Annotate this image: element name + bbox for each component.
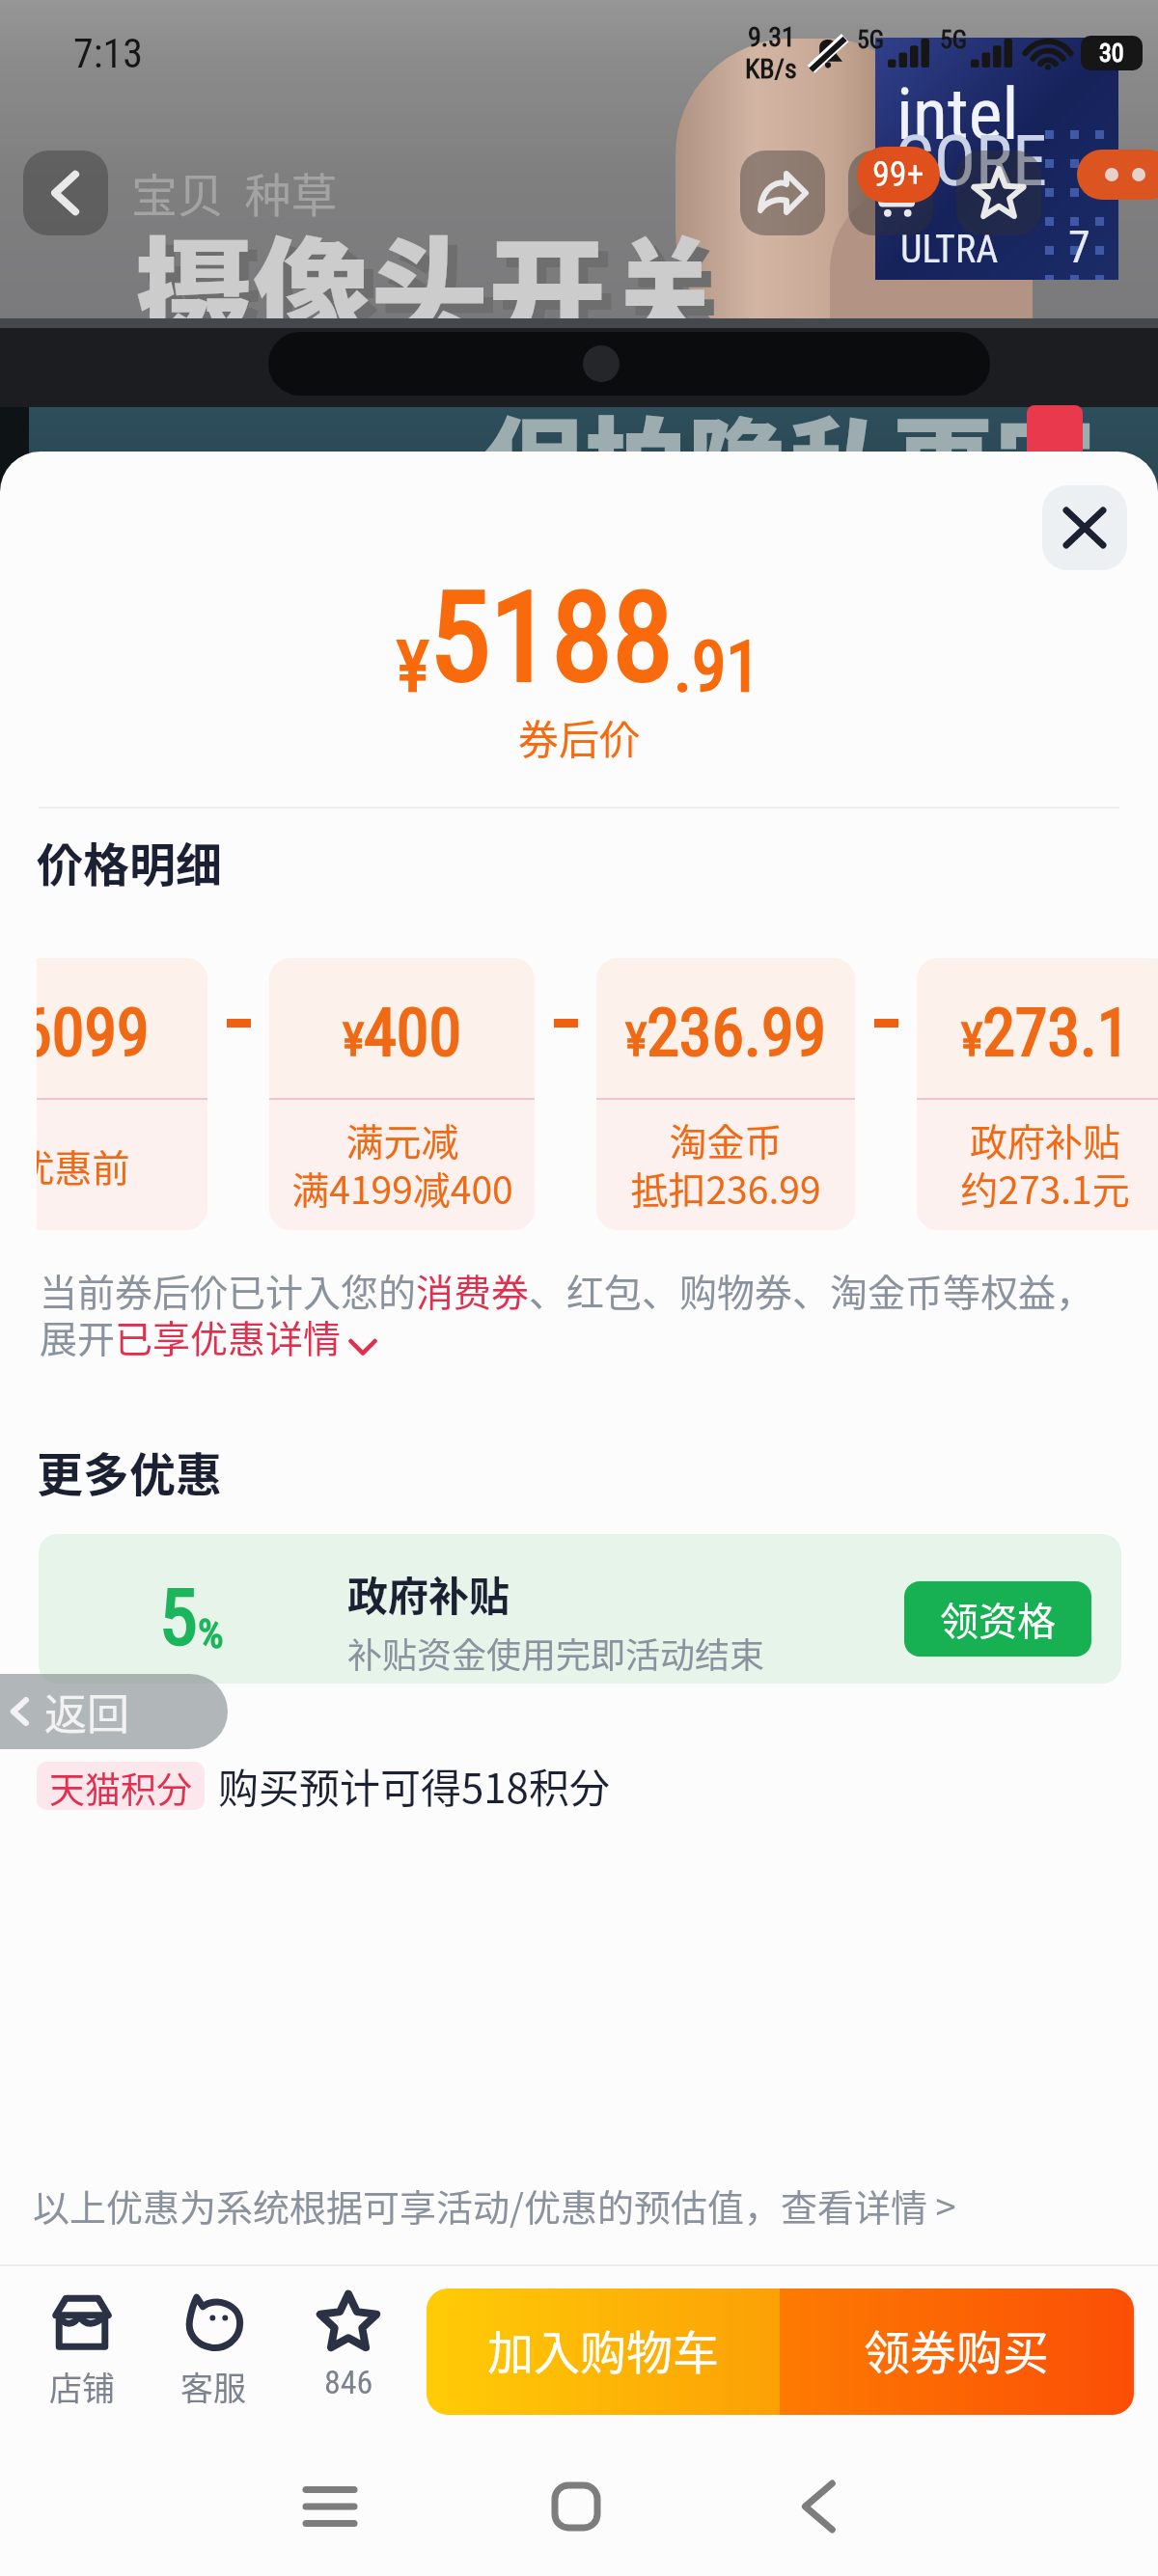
staticText: 5G (940, 25, 968, 54)
staticText: KB/s (745, 53, 797, 85)
button[interactable]: ¥400 (269, 958, 535, 1230)
staticText: 领资格 (940, 1591, 1056, 1647)
button[interactable]: Favorite (956, 151, 1041, 235)
staticText: 淘金币 抵扣236.99 (630, 1112, 821, 1215)
staticText: .91 (674, 626, 761, 707)
button[interactable]: 店铺 (21, 2291, 143, 2410)
staticText: 99+ (872, 154, 924, 195)
button[interactable]: Back (23, 151, 108, 235)
staticText: 7 (1068, 221, 1090, 273)
staticText: 9.31 (748, 21, 795, 53)
staticText: 5188 (429, 565, 674, 710)
staticText: 加入购物车 (487, 2316, 720, 2383)
staticText: ULTRA (900, 227, 999, 272)
staticText: CORE (895, 121, 1048, 202)
staticText: 更多优惠 (37, 1438, 223, 1505)
staticText: 以上优惠为系统根据可享活动/优惠的预估值，查看详情 > (33, 2179, 956, 2232)
staticText: ¥6099 (37, 995, 150, 1072)
staticText: ¥ (397, 626, 429, 707)
staticText: 摄像头开关 (135, 199, 724, 370)
button[interactable]: 领券购买 (780, 2288, 1134, 2415)
button[interactable]: Recents (284, 2460, 376, 2553)
staticText: 店铺 (49, 2363, 115, 2410)
staticText: ¥273.1 (961, 995, 1130, 1072)
button[interactable]: 加入购物车 (427, 2288, 780, 2415)
button[interactable]: Close (1042, 485, 1127, 570)
button[interactable]: ¥6099 (37, 958, 207, 1230)
staticText: 宝贝 种草 (131, 158, 338, 226)
staticText: 客服 (180, 2363, 246, 2410)
staticText: 保拍隐私更安 (482, 384, 1096, 532)
staticText: 30 (1099, 39, 1124, 68)
button[interactable]: ¥273.1 (917, 958, 1158, 1230)
staticText: ¥400 (343, 995, 461, 1072)
staticText: intel (896, 72, 1019, 156)
staticText: 5 (159, 1573, 198, 1663)
button[interactable]: 5 (39, 1534, 1121, 1684)
button[interactable]: More (1077, 150, 1158, 200)
staticText: 满元减 满4199减400 (291, 1112, 513, 1215)
button[interactable]: Back (772, 2460, 865, 2553)
button[interactable]: Back (0, 1674, 228, 1749)
button[interactable]: Share (740, 151, 825, 235)
button[interactable]: 846 (288, 2291, 409, 2401)
staticText: 5G (857, 25, 885, 54)
staticText: 返回 (44, 1681, 129, 1742)
staticText: 7:13 (73, 30, 144, 77)
staticText: 政府补贴 约273.1元 (960, 1112, 1130, 1215)
staticText: 购买预计可得518积分 (218, 1756, 610, 1815)
staticText: 优惠前 (37, 1138, 130, 1192)
staticText: 846 (324, 2363, 373, 2401)
staticText: 补贴资金使用完即活动结束 (347, 1628, 765, 1678)
staticText: ¥236.99 (625, 995, 827, 1072)
staticText: 价格明细 (37, 828, 223, 895)
staticText: 当前券后价已计入您的消费券、红包、购物券、淘金币等权益，展开已享优惠详情 (40, 1263, 1125, 1364)
staticText: 摄像头开关 (145, 208, 733, 379)
staticText: 领券购买 (864, 2316, 1050, 2383)
button[interactable]: 领资格 (904, 1581, 1091, 1657)
button[interactable]: Cart (848, 151, 933, 235)
button[interactable]: Home (530, 2460, 622, 2553)
staticText: 天猫积分 (49, 1762, 192, 1810)
staticText: % (198, 1610, 224, 1658)
staticText: 政府补贴 (347, 1564, 510, 1623)
button[interactable]: ¥236.99 (596, 958, 855, 1230)
staticText: 券后价 (518, 707, 641, 766)
button[interactable]: 客服 (152, 2291, 274, 2410)
